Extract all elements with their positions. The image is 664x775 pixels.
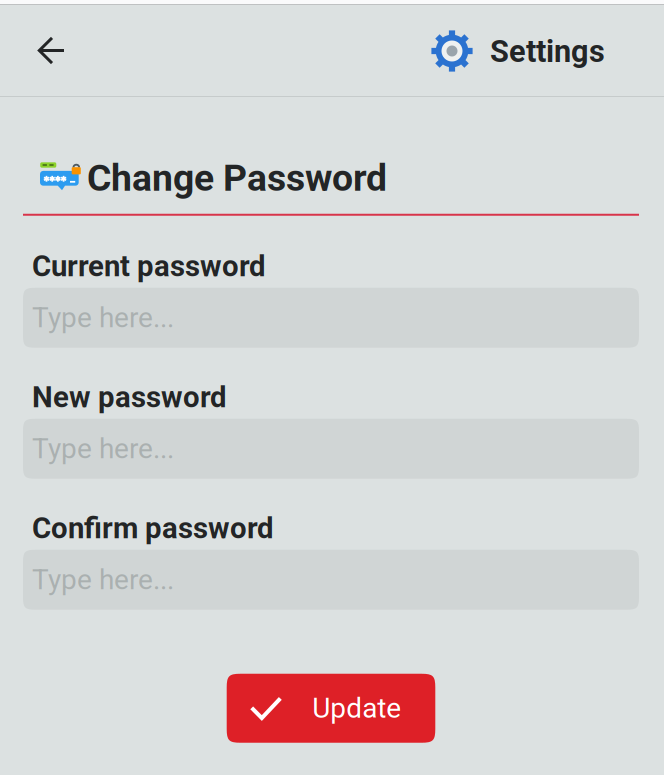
staticText: Type here... <box>32 563 174 596</box>
staticText: New password <box>32 380 227 414</box>
button[interactable]: Type here... <box>23 550 639 610</box>
staticText: Change Password <box>87 156 387 200</box>
staticText: Update <box>312 692 401 725</box>
staticText: Type here... <box>32 301 174 334</box>
button[interactable]: Type here... <box>23 288 639 348</box>
button[interactable]: Back <box>0 5 84 96</box>
button[interactable]: Settings <box>431 5 664 96</box>
staticText: Type here... <box>32 432 174 465</box>
button[interactable]: Type here... <box>23 419 639 479</box>
staticText: Current password <box>32 249 266 283</box>
staticText: Settings <box>490 33 605 69</box>
staticText: Confirm password <box>32 511 274 545</box>
button[interactable]: Update <box>227 674 435 743</box>
